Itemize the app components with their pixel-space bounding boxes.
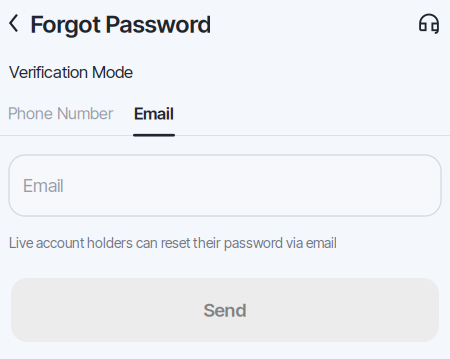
staticText: Email [23,175,63,196]
staticText: Live account holders can reset their pas… [9,235,337,251]
button[interactable]: Contact support [408,0,450,46]
button[interactable]: Forgot Password [0,0,217,46]
button[interactable]: Phone Number [8,94,113,136]
staticText: Send [203,299,246,321]
staticText: Forgot Password [30,9,211,38]
button[interactable]: Email [133,94,175,136]
staticText: Email [134,103,174,124]
button[interactable]: Email [9,155,441,216]
staticText: Verification Mode [9,62,133,82]
button[interactable]: Send [11,278,439,342]
staticText: Phone Number [8,104,113,123]
